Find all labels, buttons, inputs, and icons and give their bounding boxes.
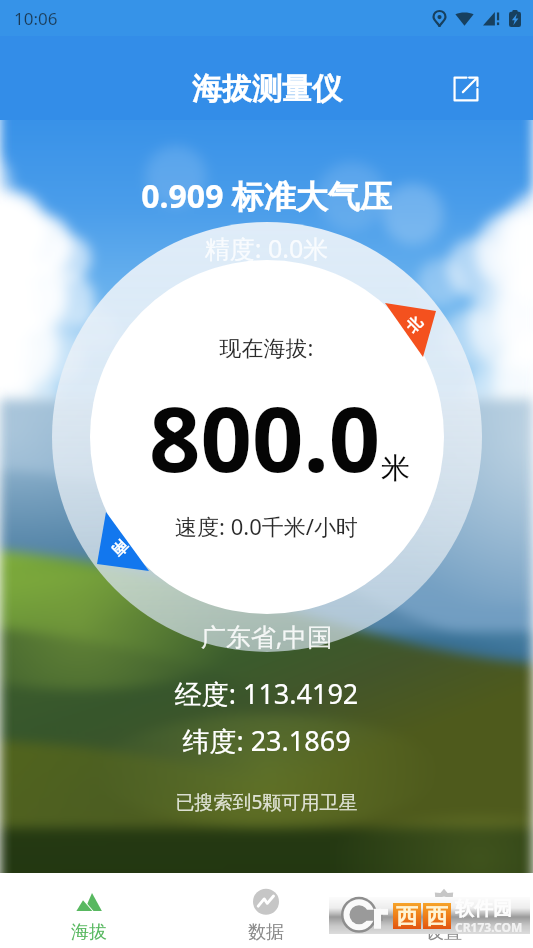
staticText: 海拔测量仪	[192, 70, 342, 108]
button[interactable]: 海拔	[0, 873, 177, 948]
staticText: 速度: 0.0千米/小时	[0, 511, 533, 541]
button[interactable]: 数据	[177, 873, 355, 948]
staticText: 软件园	[455, 897, 512, 921]
staticText: 西	[396, 903, 418, 929]
staticText: 设置	[426, 921, 462, 944]
button[interactable]: Share	[444, 67, 488, 111]
staticText: 10:06	[14, 7, 58, 30]
staticText: 南	[107, 536, 131, 560]
staticText: 北	[403, 313, 427, 337]
staticText: 精度: 0.0米	[0, 231, 533, 265]
staticText: 现在海拔:	[0, 332, 533, 362]
staticText: 纬度: 23.1869	[0, 722, 533, 759]
staticText: 西	[426, 903, 448, 929]
staticText: 0.909 标准大气压	[0, 174, 533, 218]
staticText: 米	[381, 450, 410, 487]
staticText: 广东省,中国	[0, 619, 533, 653]
staticText: 海拔	[71, 921, 107, 944]
staticText: CR173.COM	[455, 919, 523, 932]
staticText: 数据	[248, 921, 284, 944]
staticText: 800.0	[149, 376, 381, 499]
staticText: 已搜索到5颗可用卫星	[0, 789, 533, 815]
staticText: 经度: 113.4192	[0, 675, 533, 712]
button[interactable]: 设置	[355, 873, 533, 948]
